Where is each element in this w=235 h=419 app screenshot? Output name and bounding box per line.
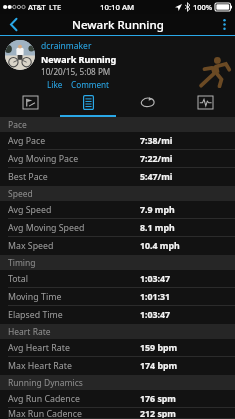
button[interactable]: Avg Moving Speed	[0, 219, 235, 237]
staticText: Newark Running	[41, 53, 117, 65]
staticText: 10/20/15, 5:08 PM	[41, 66, 111, 77]
button[interactable]: More options	[213, 14, 235, 35]
staticText: 100%	[193, 2, 213, 12]
button[interactable]: Laps	[119, 88, 175, 117]
staticText: Max Speed	[8, 240, 54, 252]
staticText: 5:47/mi	[140, 171, 173, 183]
button[interactable]: Max Run Cadence	[0, 408, 235, 419]
staticText: Newark Running	[72, 17, 164, 33]
button[interactable]: Avg Pace	[0, 132, 235, 150]
staticText: 1:01:31	[140, 291, 171, 303]
staticText: 7:38/mi	[140, 135, 173, 147]
staticText: Running Dynamics	[8, 377, 83, 389]
staticText: 8.1 mph	[140, 222, 175, 234]
staticText: AT&T	[28, 2, 46, 12]
staticText: Heart Rate	[8, 326, 51, 338]
staticText: LTE	[49, 2, 62, 12]
button[interactable]: Best Pace	[0, 168, 235, 186]
staticText: Avg Moving Speed	[8, 222, 85, 234]
staticText: Comment	[71, 79, 110, 88]
button[interactable]: Max Heart Rate	[0, 357, 235, 375]
button[interactable]: Max Speed	[0, 237, 235, 255]
button[interactable]: Avg Speed	[0, 201, 235, 219]
staticText: Moving Time	[8, 291, 62, 303]
staticText: Max Heart Rate	[8, 360, 72, 372]
button[interactable]: Avg Run Cadence	[0, 390, 235, 408]
button[interactable]: Map	[2, 88, 58, 117]
staticText: Avg Moving Pace	[8, 153, 79, 165]
staticText: Avg Pace	[8, 135, 46, 147]
button[interactable]: Moving Time	[0, 288, 235, 306]
button[interactable]: Avg Moving Pace	[0, 150, 235, 168]
staticText: Pace	[8, 119, 27, 131]
staticText: Avg Run Cadence	[8, 393, 80, 405]
button[interactable]: Comment	[71, 79, 110, 88]
staticText: 1:03:47	[140, 273, 171, 285]
button[interactable]: Details	[60, 88, 116, 117]
staticText: Avg Speed	[8, 204, 52, 216]
staticText: Best Pace	[8, 171, 48, 183]
staticText: 176 spm	[140, 393, 176, 405]
button[interactable]: Like	[47, 79, 63, 88]
button[interactable]: Elapsed Time	[0, 306, 235, 324]
staticText: 7.9 mph	[140, 204, 175, 216]
staticText: Speed	[8, 188, 33, 200]
staticText: 10.4 mph	[140, 240, 180, 252]
staticText: Like	[47, 79, 63, 88]
staticText: Timing	[8, 257, 36, 269]
button[interactable]: Back	[0, 14, 26, 35]
staticText: 159 bpm	[140, 342, 178, 354]
staticText: 7:22/mi	[140, 153, 173, 165]
staticText: 10:10 AM	[100, 2, 135, 13]
staticText: Max Run Cadence	[8, 408, 82, 419]
staticText: 1:03:47	[140, 309, 171, 321]
staticText: 212 spm	[140, 408, 176, 419]
button[interactable]: Avg Heart Rate	[0, 339, 235, 357]
staticText: 174 bpm	[140, 360, 178, 372]
staticText: dcrainmaker	[41, 40, 92, 52]
staticText: Total	[8, 273, 28, 285]
staticText: Avg Heart Rate	[8, 342, 70, 354]
staticText: Elapsed Time	[8, 309, 63, 321]
button[interactable]: Total	[0, 270, 235, 288]
button[interactable]: Charts	[177, 88, 233, 117]
button[interactable]: dcrainmaker	[5, 40, 230, 88]
